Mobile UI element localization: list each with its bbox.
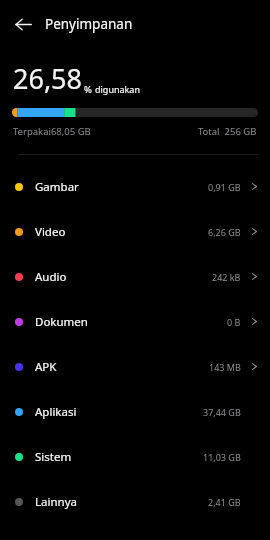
staticText: Gambar: [35, 179, 79, 195]
staticText: Aplikasi: [35, 404, 77, 420]
staticText: %: [84, 83, 92, 96]
staticText: Penyimpanan: [45, 15, 133, 33]
staticText: 2,41 GB: [208, 496, 241, 508]
button[interactable]: Gambar: [0, 164, 270, 209]
button[interactable]: APK: [0, 344, 270, 389]
staticText: Total 256 GB: [198, 125, 257, 138]
staticText: 11,03 GB: [203, 451, 241, 463]
button[interactable]: Dokumen: [0, 299, 270, 344]
staticText: Lainnya: [35, 494, 77, 510]
button[interactable]: Video: [0, 209, 270, 254]
staticText: Terpakai68,05 GB: [13, 125, 91, 138]
staticText: Dokumen: [35, 314, 88, 330]
button[interactable]: Back: [9, 10, 37, 38]
staticText: digunakan: [95, 83, 140, 95]
staticText: Sistem: [35, 449, 72, 465]
button[interactable]: Audio: [0, 254, 270, 299]
button[interactable]: Aplikasi: [0, 389, 270, 434]
staticText: Video: [35, 224, 66, 240]
staticText: Audio: [35, 269, 67, 285]
staticText: 6,26 GB: [208, 226, 241, 238]
staticText: 37,44 GB: [203, 406, 241, 418]
staticText: 26,58: [13, 60, 83, 97]
button[interactable]: Lainnya: [0, 479, 270, 524]
staticText: 0 B: [227, 316, 241, 328]
staticText: 0,91 GB: [208, 181, 241, 193]
staticText: 143 MB: [209, 361, 241, 373]
staticText: APK: [35, 359, 57, 375]
staticText: 242 kB: [212, 271, 241, 283]
button[interactable]: Sistem: [0, 434, 270, 479]
